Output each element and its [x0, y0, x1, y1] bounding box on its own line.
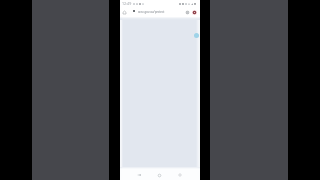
button[interactable]: Recents	[173, 169, 187, 180]
staticText: acsc.gov.au/protect	[138, 10, 165, 14]
button[interactable]: Chat assistant	[194, 33, 199, 38]
button[interactable]: Account	[191, 7, 198, 17]
button[interactable]: Home	[121, 7, 128, 17]
staticText: 12:49	[122, 1, 132, 6]
button[interactable]: Back	[132, 169, 146, 180]
button[interactable]: Home	[152, 169, 166, 180]
button[interactable]: Tabs	[184, 7, 191, 17]
